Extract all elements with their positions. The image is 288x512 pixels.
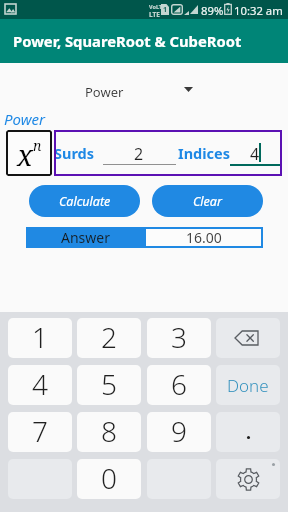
staticText: 2 — [101, 318, 117, 356]
button[interactable]: Calculate — [29, 185, 140, 217]
staticText: x — [17, 135, 33, 174]
button[interactable]: Backspace — [216, 318, 280, 358]
staticText: Done — [227, 374, 269, 397]
button[interactable]: Done — [216, 365, 280, 405]
button[interactable]: 3 — [147, 318, 211, 358]
staticText: n — [33, 136, 42, 155]
staticText: 4 — [32, 365, 48, 403]
button[interactable]: Answer — [26, 227, 144, 248]
staticText: Power — [4, 109, 45, 129]
staticText: 4 — [250, 143, 260, 165]
button[interactable]: 1 — [8, 318, 72, 358]
staticText: 10:32 am — [234, 3, 283, 18]
button[interactable]: 2 — [77, 318, 141, 358]
button[interactable]: Settings — [216, 459, 280, 499]
staticText: Answer — [61, 228, 110, 247]
staticText: 9 — [171, 412, 187, 450]
button[interactable]: Decimal point — [216, 412, 280, 452]
staticText: 2 — [134, 143, 144, 165]
staticText: 8 — [101, 412, 117, 450]
button[interactable]: x — [6, 130, 52, 176]
staticText: Indices — [178, 143, 230, 163]
staticText: 89% — [201, 3, 224, 18]
staticText: 3 — [171, 318, 187, 356]
staticText: Surds — [54, 143, 95, 163]
button[interactable]: 4 — [230, 140, 281, 168]
staticText: LTE — [149, 10, 160, 19]
staticText: 1 — [32, 318, 48, 356]
staticText: 0 — [101, 459, 117, 497]
staticText: 7 — [32, 412, 48, 450]
button[interactable]: 7 — [8, 412, 72, 452]
button[interactable]: 4 — [8, 365, 72, 405]
button[interactable]: 2 — [103, 140, 176, 168]
staticText: VoLTE — [149, 3, 166, 10]
staticText: 1 — [163, 5, 168, 15]
staticText: 16.00 — [186, 228, 222, 247]
button[interactable]: 5 — [77, 365, 141, 405]
staticText: Power, SquareRoot & CubeRoot — [13, 31, 242, 51]
staticText: 5 — [101, 365, 117, 403]
button[interactable]: 8 — [77, 412, 141, 452]
staticText: 6 — [171, 365, 187, 403]
button[interactable]: Power — [60, 79, 200, 101]
staticText: Power — [85, 83, 124, 101]
button[interactable]: 6 — [147, 365, 211, 405]
button[interactable]: Clear — [152, 185, 263, 217]
staticText: Clear — [193, 193, 222, 210]
staticText: Calculate — [59, 193, 111, 210]
button[interactable]: 0 — [77, 459, 141, 499]
button[interactable]: 9 — [147, 412, 211, 452]
